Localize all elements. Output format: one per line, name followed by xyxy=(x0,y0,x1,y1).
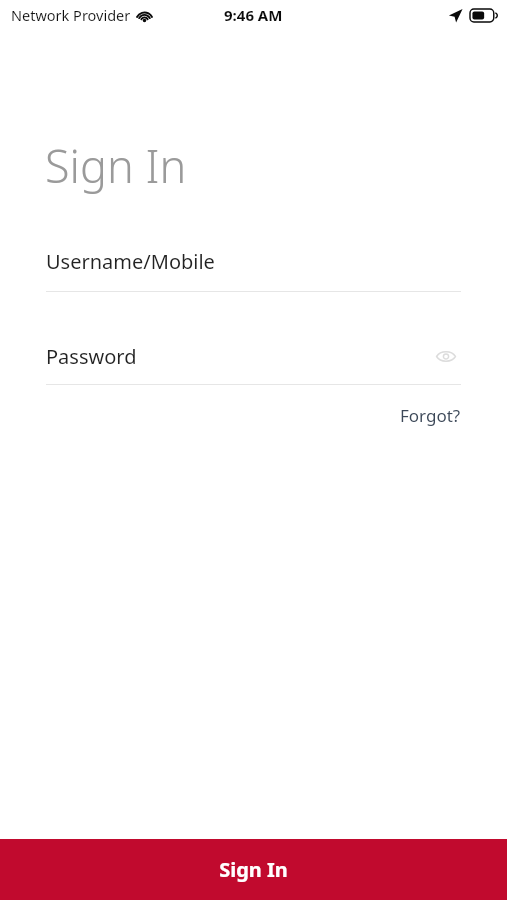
staticText: Sign In xyxy=(45,135,187,196)
staticText: Network Provider xyxy=(11,5,131,25)
button[interactable]: Forgot? xyxy=(396,401,465,430)
staticText: 9:46 AM xyxy=(224,5,283,25)
button[interactable]: Show password xyxy=(431,341,461,371)
staticText: Username/Mobile xyxy=(46,248,215,275)
button[interactable]: Password xyxy=(46,341,461,371)
staticText: Forgot? xyxy=(400,404,461,427)
staticText: Password xyxy=(46,343,137,370)
button[interactable]: Username/Mobile xyxy=(46,248,461,292)
staticText: Sign In xyxy=(219,856,288,883)
button[interactable]: Sign In xyxy=(0,839,507,900)
